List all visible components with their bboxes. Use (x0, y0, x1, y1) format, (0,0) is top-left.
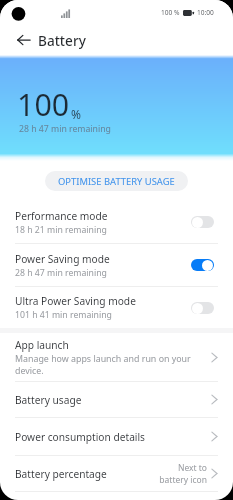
staticText: Performance mode (15, 209, 108, 223)
button[interactable]: Back (12, 28, 36, 52)
staticText: 18 h 21 min remaining (15, 224, 107, 236)
staticText: Power Saving mode (15, 252, 110, 266)
button[interactable]: App launch (0, 334, 233, 381)
staticText: 28 h 47 min remaining (15, 267, 107, 279)
staticText: Power consumption details (15, 430, 146, 444)
button[interactable]: Ultra Power Saving mode (0, 287, 233, 328)
button[interactable]: Battery usage (0, 382, 233, 417)
staticText: 10:00 (197, 8, 214, 17)
staticText: 100 (17, 84, 70, 125)
staticText: % (71, 106, 81, 122)
button[interactable]: Power Saving mode (0, 244, 233, 286)
button[interactable]: Power consumption details (0, 418, 233, 455)
staticText: Next to battery icon (159, 462, 207, 486)
staticText: App launch (15, 338, 69, 352)
button[interactable]: Battery percentage (0, 456, 233, 491)
staticText: Battery (38, 31, 86, 50)
button[interactable]: Performance mode (0, 201, 233, 243)
staticText: 100 % (161, 8, 180, 17)
staticText: OPTIMISE BATTERY USAGE (58, 175, 175, 188)
button[interactable]: OPTIMISE BATTERY USAGE (45, 171, 188, 191)
staticText: Battery usage (15, 393, 82, 407)
staticText: 28 h 47 min remaining (19, 123, 111, 135)
staticText: Ultra Power Saving mode (15, 294, 136, 308)
staticText: Manage how apps launch and run on your d… (15, 353, 211, 377)
staticText: Battery percentage (15, 467, 107, 481)
staticText: 101 h 41 min remaining (15, 309, 112, 321)
